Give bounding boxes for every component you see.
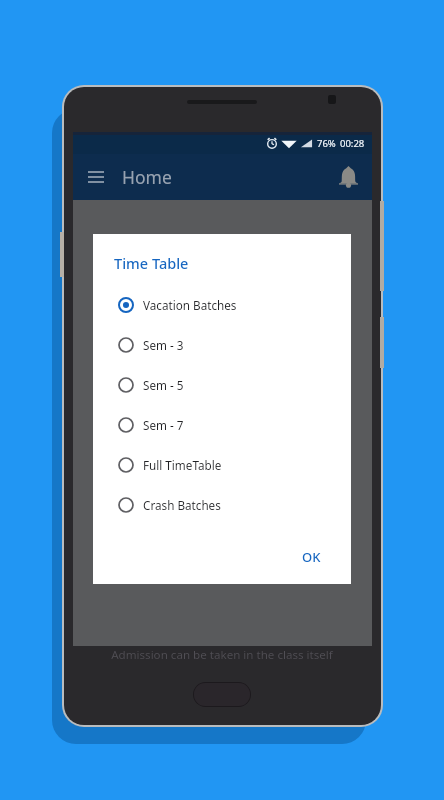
button[interactable]: Crash Batches	[93, 485, 351, 525]
staticText: Crash Batches	[143, 497, 221, 513]
button[interactable]: OK	[296, 544, 327, 570]
button[interactable]: Vacation Batches	[93, 285, 351, 325]
staticText: Admission can be taken in the class itse…	[72, 647, 372, 663]
staticText: Sem - 3	[143, 337, 184, 353]
staticText: Time Table	[114, 253, 189, 273]
staticText: 76%	[317, 137, 336, 150]
staticText: 00:28	[340, 137, 365, 150]
button[interactable]: Sem - 7	[93, 405, 351, 445]
button[interactable]: Full TimeTable	[93, 445, 351, 485]
staticText: Full TimeTable	[143, 457, 222, 473]
button[interactable]: Sem - 3	[93, 325, 351, 365]
button[interactable]: Notifications	[330, 159, 366, 195]
staticText: OK	[302, 548, 321, 566]
button[interactable]: Sem - 5	[93, 365, 351, 405]
button[interactable]: Open navigation menu	[78, 159, 114, 195]
staticText: Vacation Batches	[143, 297, 237, 313]
staticText: Sem - 5	[143, 377, 184, 393]
staticText: Sem - 7	[143, 417, 184, 433]
staticText: Home	[122, 165, 172, 189]
